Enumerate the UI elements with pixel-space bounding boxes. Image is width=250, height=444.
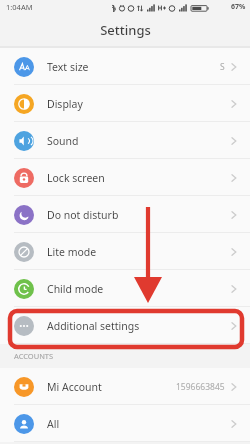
- staticText: 67%: [231, 2, 246, 12]
- staticText: Settings: [100, 21, 151, 39]
- staticText: Lite mode: [47, 245, 97, 259]
- staticText: Child mode: [47, 282, 104, 296]
- staticText: Lock screen: [47, 171, 105, 185]
- staticText: Do not disturb: [47, 208, 119, 222]
- button[interactable]: All: [0, 405, 250, 442]
- button[interactable]: Lock screen: [0, 159, 250, 196]
- staticText: S: [220, 61, 225, 73]
- staticText: Display: [47, 97, 83, 111]
- staticText: Sound: [47, 134, 79, 148]
- staticText: ACCOUNTS: [14, 351, 54, 361]
- button[interactable]: Lite mode: [0, 233, 250, 270]
- button[interactable]: Display: [0, 85, 250, 122]
- button[interactable]: Additional settings: [0, 307, 250, 344]
- staticText: Additional settings: [47, 319, 140, 333]
- button[interactable]: Text size: [0, 48, 250, 85]
- button[interactable]: Mi Account: [0, 368, 250, 405]
- button[interactable]: Child mode: [0, 270, 250, 307]
- staticText: 1596663845: [176, 381, 225, 393]
- staticText: Mi Account: [47, 380, 102, 394]
- staticText: Text size: [47, 60, 89, 74]
- staticText: 1:04AM: [6, 2, 33, 12]
- button[interactable]: Sound: [0, 122, 250, 159]
- button[interactable]: Do not disturb: [0, 196, 250, 233]
- staticText: All: [47, 417, 60, 431]
